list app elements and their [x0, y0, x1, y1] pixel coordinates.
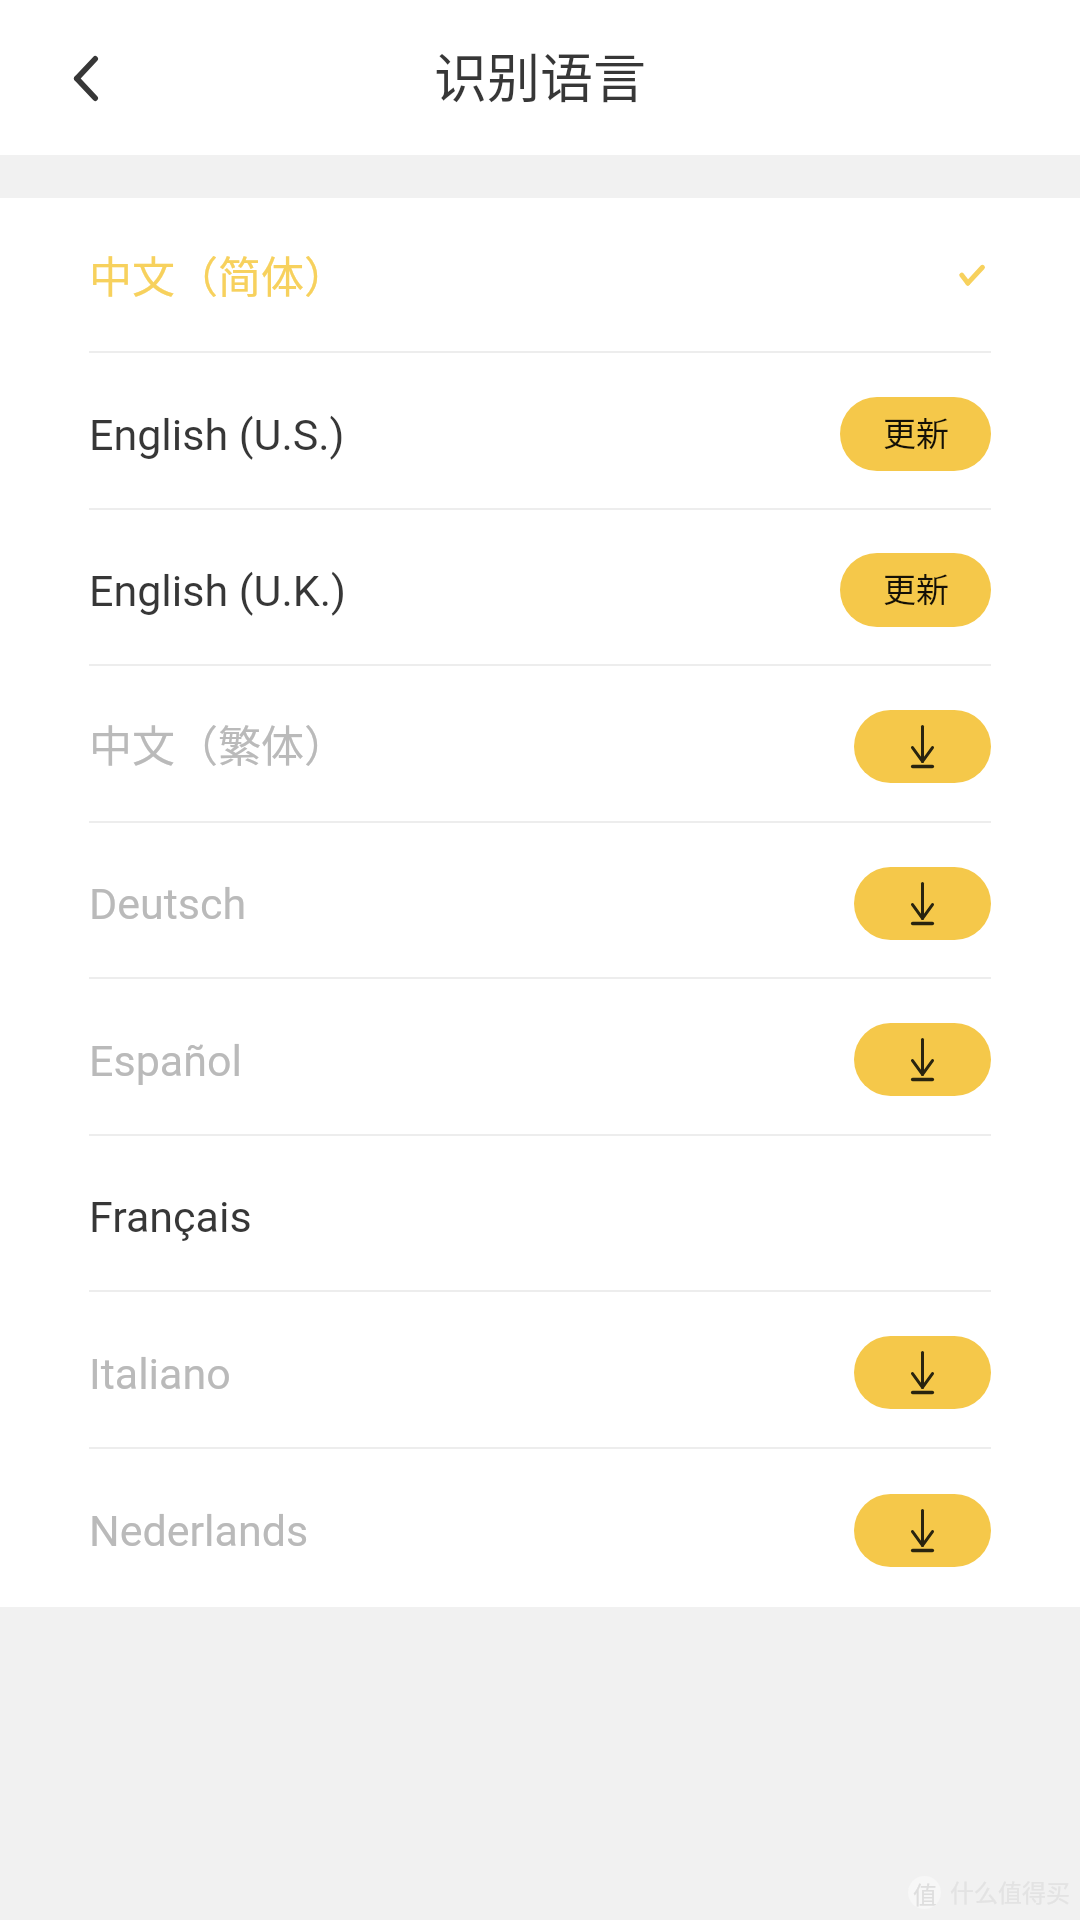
staticText: 什么值得买 — [950, 1874, 1070, 1909]
staticText: English (U.K.) — [89, 566, 347, 616]
staticText: Italiano — [89, 1349, 231, 1399]
button[interactable]: 中文（繁体） — [0, 666, 1080, 823]
button[interactable]: Download — [854, 1336, 991, 1409]
staticText: 中文（简体） — [89, 243, 347, 305]
staticText: Français — [89, 1192, 252, 1242]
button[interactable]: English (U.S.) — [0, 353, 1080, 510]
button[interactable]: Download — [854, 1494, 991, 1567]
staticText: 更新 — [883, 564, 949, 612]
button[interactable]: English (U.K.) — [0, 510, 1080, 666]
button[interactable]: Back — [43, 35, 129, 121]
staticText: 中文（繁体） — [89, 712, 347, 774]
staticText: English (U.S.) — [89, 410, 345, 460]
staticText: Nederlands — [89, 1506, 309, 1556]
staticText: 更新 — [883, 408, 949, 456]
button[interactable]: Nederlands — [0, 1449, 1080, 1607]
button[interactable]: 更新 — [840, 397, 991, 471]
button[interactable]: Español — [0, 979, 1080, 1136]
button[interactable]: Français — [0, 1136, 1080, 1292]
button[interactable]: Deutsch — [0, 823, 1080, 979]
button[interactable]: Download — [854, 1023, 991, 1096]
staticText: Deutsch — [89, 879, 247, 929]
button[interactable]: Italiano — [0, 1292, 1080, 1449]
button[interactable]: Download — [854, 710, 991, 783]
button[interactable]: Download — [854, 867, 991, 940]
button[interactable]: 更新 — [840, 553, 991, 627]
staticText: 值 — [913, 1876, 937, 1909]
button[interactable]: 中文（简体） — [0, 198, 1080, 353]
staticText: Español — [89, 1036, 242, 1086]
staticText: 识别语言 — [434, 37, 646, 114]
